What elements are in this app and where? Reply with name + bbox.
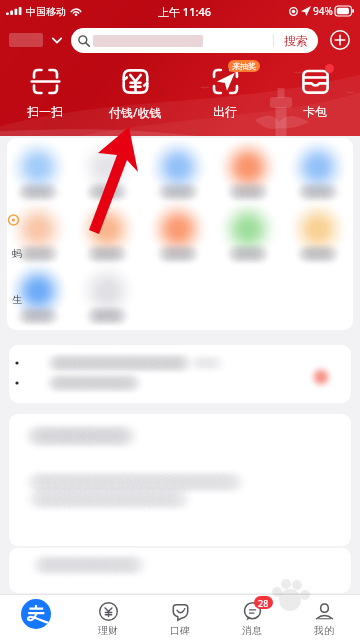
staticText: 付钱/收钱 [109,104,162,120]
button[interactable]: Add [325,25,355,55]
staticText: 消息 [242,624,262,637]
button[interactable] [9,345,351,403]
staticText: 我的 [314,624,334,637]
button[interactable]: 来抽奖 [180,61,270,119]
staticText: 中国移动 [26,5,66,18]
button[interactable] [146,138,215,202]
button[interactable]: 扫一扫 [0,61,90,119]
button[interactable] [9,548,351,593]
button[interactable]: 付钱/收钱 [90,61,180,120]
button[interactable] [284,138,353,202]
staticText: 上午 11:46 [158,4,212,19]
button[interactable] [215,138,284,202]
button[interactable]: 搜索 [71,28,318,53]
button[interactable] [215,202,284,266]
button[interactable] [9,414,351,546]
staticText: 口碑 [170,624,190,637]
button[interactable]: 卡包 [270,61,360,119]
button[interactable] [7,138,77,202]
button[interactable] [146,202,215,266]
staticText: 搜索 [284,33,308,48]
button[interactable] [7,202,77,266]
button[interactable] [77,266,146,330]
staticText: 蚂 [12,247,22,260]
button[interactable] [7,266,77,330]
staticText: 28 [258,597,269,609]
staticText: 扫一扫 [27,104,63,119]
staticText: 生 [12,293,22,306]
button[interactable] [284,202,353,266]
staticText: 理财 [98,624,118,637]
button[interactable]: 理财 [72,595,144,640]
button[interactable]: 口碑 [144,595,216,640]
staticText: 94% [313,4,333,18]
staticText: 卡包 [303,104,327,119]
button[interactable]: 28 [216,595,288,640]
button[interactable]: 我的 [288,595,360,640]
button[interactable] [0,25,71,55]
button[interactable] [77,138,146,202]
staticText: 出行 [213,104,237,119]
button[interactable] [77,202,146,266]
button[interactable]: 首页 [0,595,72,640]
staticText: 来抽奖 [232,61,256,71]
